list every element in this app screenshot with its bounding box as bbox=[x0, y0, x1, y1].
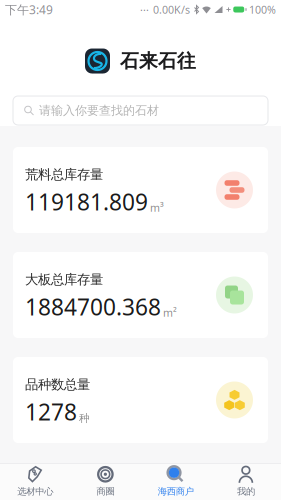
button[interactable]: 海西商户 bbox=[140, 463, 211, 500]
staticText: 0.00K/s bbox=[153, 2, 190, 17]
staticText: 请输入你要查找的石材 bbox=[39, 103, 159, 118]
staticText: 品种数总量 bbox=[25, 376, 90, 393]
staticText: 下午3:49 bbox=[5, 1, 53, 17]
button[interactable]: 品种数总量 bbox=[0, 357, 281, 443]
staticText: 荒料总库存量 bbox=[25, 166, 103, 183]
staticText: 1278 bbox=[25, 397, 77, 427]
button[interactable]: 大板总库存量 bbox=[0, 252, 281, 338]
button[interactable]: 我的 bbox=[211, 463, 281, 500]
button[interactable]: 商圈 bbox=[70, 463, 140, 500]
staticText: 石来石往 bbox=[120, 49, 196, 72]
staticText: 100% bbox=[249, 2, 276, 17]
button[interactable]: 荒料总库存量 bbox=[0, 147, 281, 233]
staticText: 海西商户 bbox=[158, 486, 194, 497]
button[interactable]: 选材中心 bbox=[0, 463, 70, 500]
staticText: 商圈 bbox=[96, 486, 114, 497]
button[interactable]: 搜索石材 bbox=[0, 87, 281, 125]
staticText: ··· bbox=[140, 2, 149, 17]
staticText: 大板总库存量 bbox=[25, 271, 103, 288]
staticText: 种 bbox=[79, 412, 90, 425]
staticText: m² bbox=[163, 306, 177, 320]
staticText: 选材中心 bbox=[17, 486, 53, 497]
staticText: 1884700.368 bbox=[25, 292, 161, 322]
staticText: 119181.809 bbox=[25, 187, 148, 217]
staticText: 我的 bbox=[237, 486, 255, 497]
staticText: m³ bbox=[150, 201, 164, 215]
